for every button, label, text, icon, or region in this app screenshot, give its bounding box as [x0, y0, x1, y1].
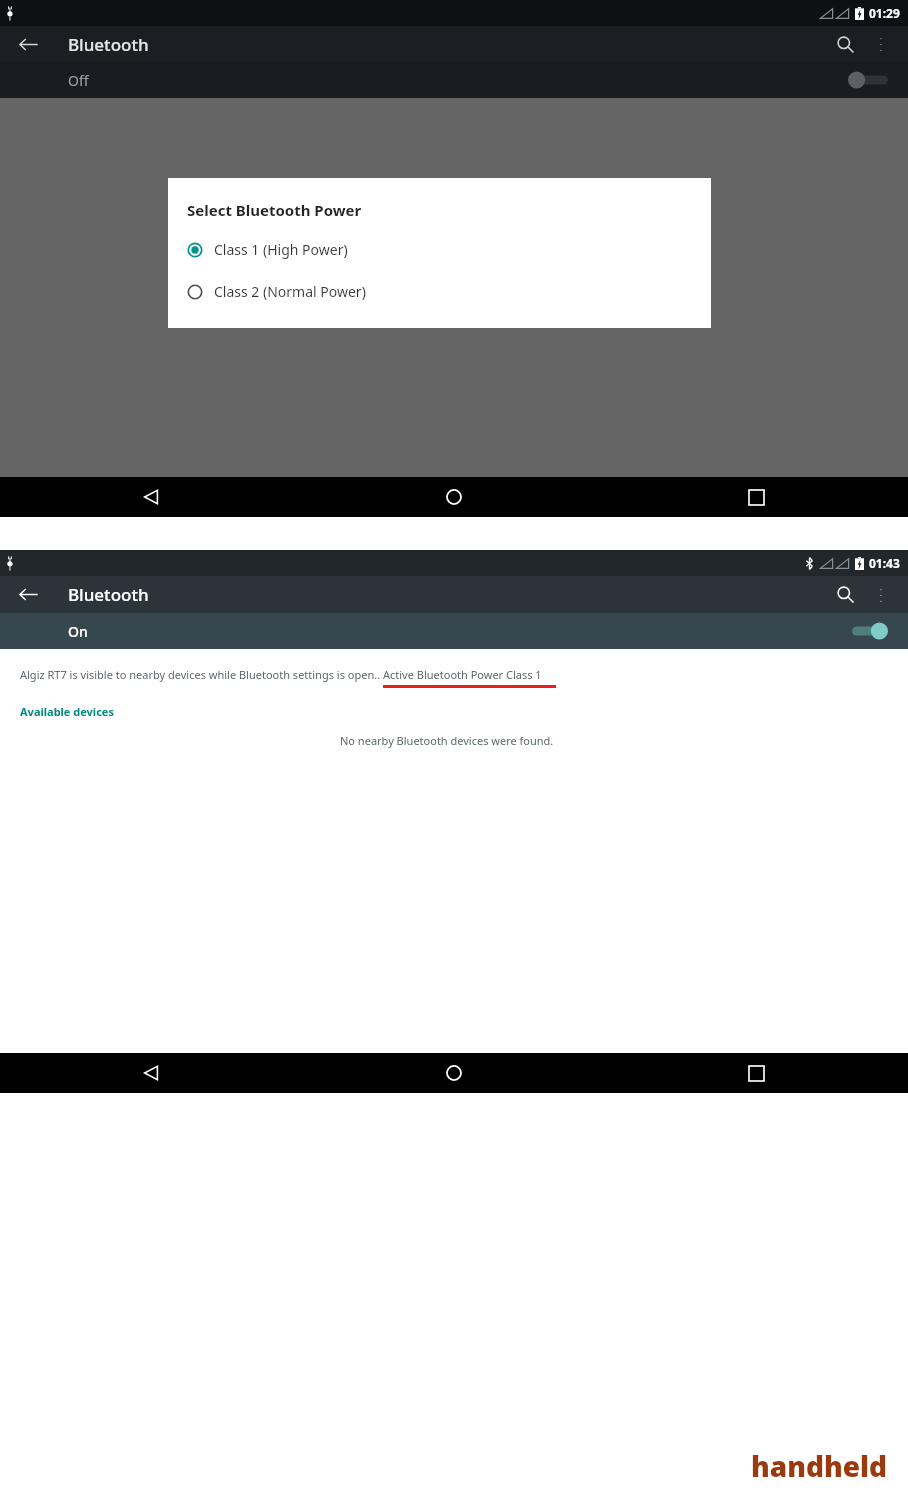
button[interactable]: Off: [0, 62, 908, 98]
staticText: On: [68, 622, 88, 641]
staticText: No nearby Bluetooth devices were found.: [340, 733, 554, 748]
button[interactable]: More options: [864, 27, 898, 61]
staticText: 01:29: [869, 5, 900, 21]
staticText: Bluetooth: [68, 583, 149, 606]
button[interactable]: Class 2 (Normal Power): [187, 277, 711, 306]
staticText: 01:43: [869, 555, 900, 571]
button[interactable]: Back: [0, 477, 302, 517]
button[interactable]: On: [0, 613, 908, 649]
button[interactable]: Recents: [605, 1053, 908, 1093]
button[interactable]: Home: [302, 1053, 605, 1093]
button[interactable]: Search: [826, 26, 864, 62]
button[interactable]: Navigate up: [8, 26, 48, 62]
staticText: Algiz RT7 is visible to nearby devices w…: [20, 667, 383, 682]
staticText: Bluetooth: [68, 33, 149, 56]
staticText: handheld: [751, 1447, 888, 1485]
staticText: Class 2 (Normal Power): [214, 282, 366, 301]
staticText: Select Bluetooth Power: [187, 200, 362, 220]
button[interactable]: Recents: [605, 477, 908, 517]
staticText: Off: [68, 71, 89, 90]
button[interactable]: Navigate up: [8, 576, 48, 613]
staticText: Active Bluetooth Power Class 1: [383, 667, 542, 682]
button[interactable]: Available devices: [20, 704, 114, 719]
staticText: Class 1 (High Power): [214, 240, 348, 259]
button[interactable]: Search: [826, 576, 864, 613]
button[interactable]: Home: [302, 477, 605, 517]
button[interactable]: More options: [864, 578, 898, 612]
button[interactable]: Back: [0, 1053, 302, 1093]
button[interactable]: Class 1 (High Power): [187, 235, 711, 264]
